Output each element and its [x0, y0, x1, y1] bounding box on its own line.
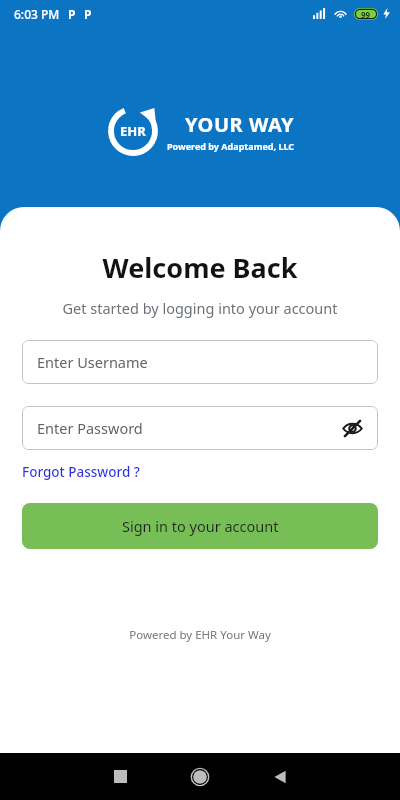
staticText: P — [68, 6, 76, 22]
staticText: 6:03 PM — [14, 6, 60, 22]
button[interactable]: Forgot Password ? — [22, 463, 140, 481]
staticText: YOUR WAY — [185, 111, 295, 138]
button[interactable]: Home — [176, 753, 224, 800]
button[interactable]: Back — [256, 753, 304, 800]
button[interactable]: Sign in to your account — [22, 503, 378, 549]
button[interactable]: Enter Password — [22, 406, 378, 450]
staticText: P — [84, 6, 92, 22]
staticText: Powered by Adaptamed, LLC — [167, 140, 295, 152]
staticText: Forgot Password ? — [22, 463, 140, 481]
button[interactable]: Show password — [338, 414, 366, 442]
staticText: Sign in to your account — [122, 516, 279, 536]
staticText: Welcome Back — [0, 249, 400, 286]
staticText: Get started by logging into your account — [0, 298, 400, 318]
staticText: Enter Username — [37, 352, 148, 372]
staticText: Powered by EHR Your Way — [0, 627, 400, 643]
button[interactable]: Enter Username — [22, 340, 378, 384]
button[interactable]: Recent apps — [96, 753, 144, 800]
staticText: EHR — [120, 122, 146, 140]
staticText: Enter Password — [37, 418, 143, 438]
staticText: 99 — [361, 9, 371, 20]
